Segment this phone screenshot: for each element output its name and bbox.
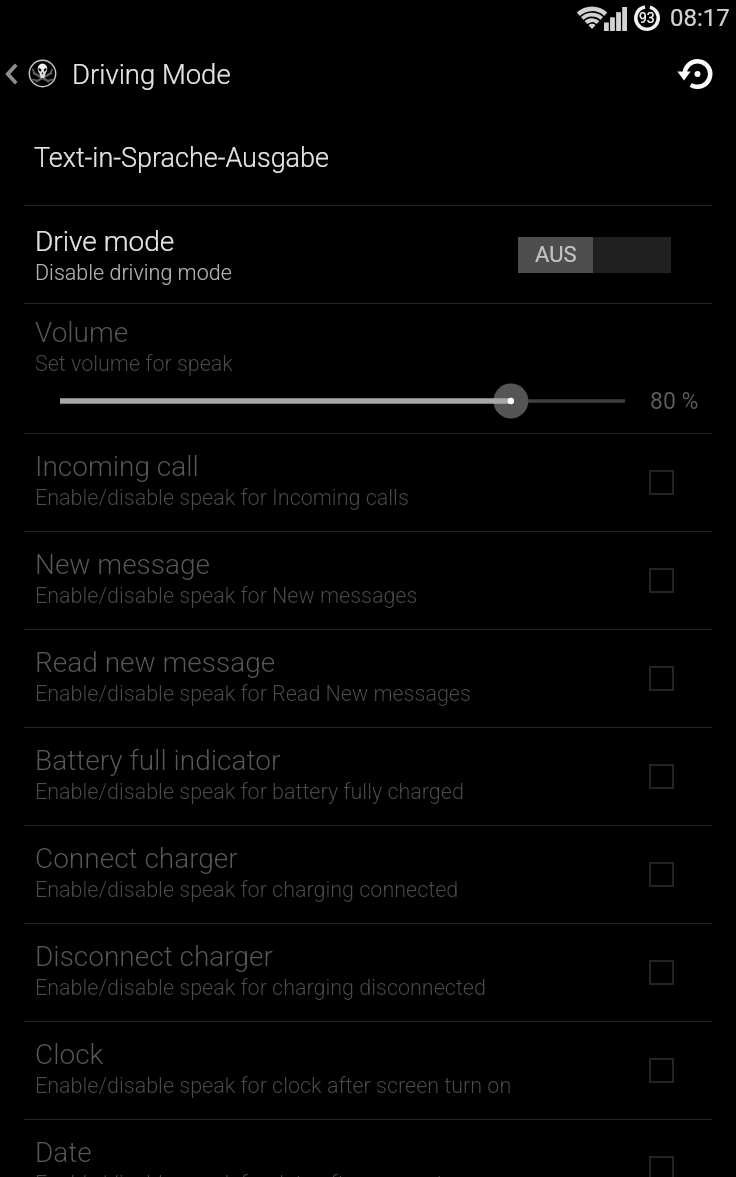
button[interactable]: Read new message — [0, 630, 736, 727]
button[interactable]: Connect charger — [0, 826, 736, 923]
staticText: Date — [35, 1136, 92, 1169]
staticText: Clock — [35, 1038, 104, 1071]
staticText: Set volume for speak — [35, 351, 233, 376]
staticText: Incoming call — [35, 450, 199, 483]
staticText: Drive mode — [35, 225, 175, 258]
staticText: Enable/disable speak for date after scre… — [35, 1171, 504, 1177]
staticText: Enable/disable speak for battery fully c… — [35, 779, 464, 804]
staticText: Driving Mode — [72, 58, 231, 90]
staticText: New message — [35, 548, 211, 581]
staticText: AUS — [535, 242, 577, 268]
button[interactable]: Reset to defaults — [670, 48, 722, 100]
staticText: 08:17 — [670, 4, 730, 32]
staticText: 93 — [639, 10, 655, 26]
button[interactable]: Navigate up — [0, 46, 26, 102]
button[interactable]: Clock — [0, 1022, 736, 1119]
button[interactable]: Battery full indicator — [0, 728, 736, 825]
staticText: Enable/disable speak for clock after scr… — [35, 1073, 512, 1098]
staticText: Disable driving mode — [35, 260, 232, 285]
staticText: Enable/disable speak for charging discon… — [35, 975, 486, 1000]
staticText: Enable/disable speak for Incoming calls — [35, 485, 409, 510]
staticText: Enable/disable speak for New messages — [35, 583, 418, 608]
button[interactable]: Disconnect charger — [0, 924, 736, 1021]
button[interactable]: Incoming call — [0, 434, 736, 531]
button[interactable]: Volume — [0, 304, 736, 433]
staticText: Enable/disable speak for Read New messag… — [35, 681, 471, 706]
staticText: 80 % — [650, 388, 699, 415]
button[interactable]: New message — [0, 532, 736, 629]
staticText: Enable/disable speak for charging connec… — [35, 877, 459, 902]
button[interactable]: Drive mode — [0, 206, 736, 303]
staticText: Text-in-Sprache-Ausgabe — [34, 142, 329, 174]
staticText: Read new message — [35, 646, 276, 679]
staticText: Connect charger — [35, 842, 238, 875]
staticText: Battery full indicator — [35, 744, 281, 777]
staticText: Disconnect charger — [35, 940, 273, 973]
button[interactable]: Date — [0, 1120, 736, 1177]
staticText: Volume — [35, 316, 129, 349]
button[interactable]: Drive mode switch, off — [518, 237, 671, 273]
